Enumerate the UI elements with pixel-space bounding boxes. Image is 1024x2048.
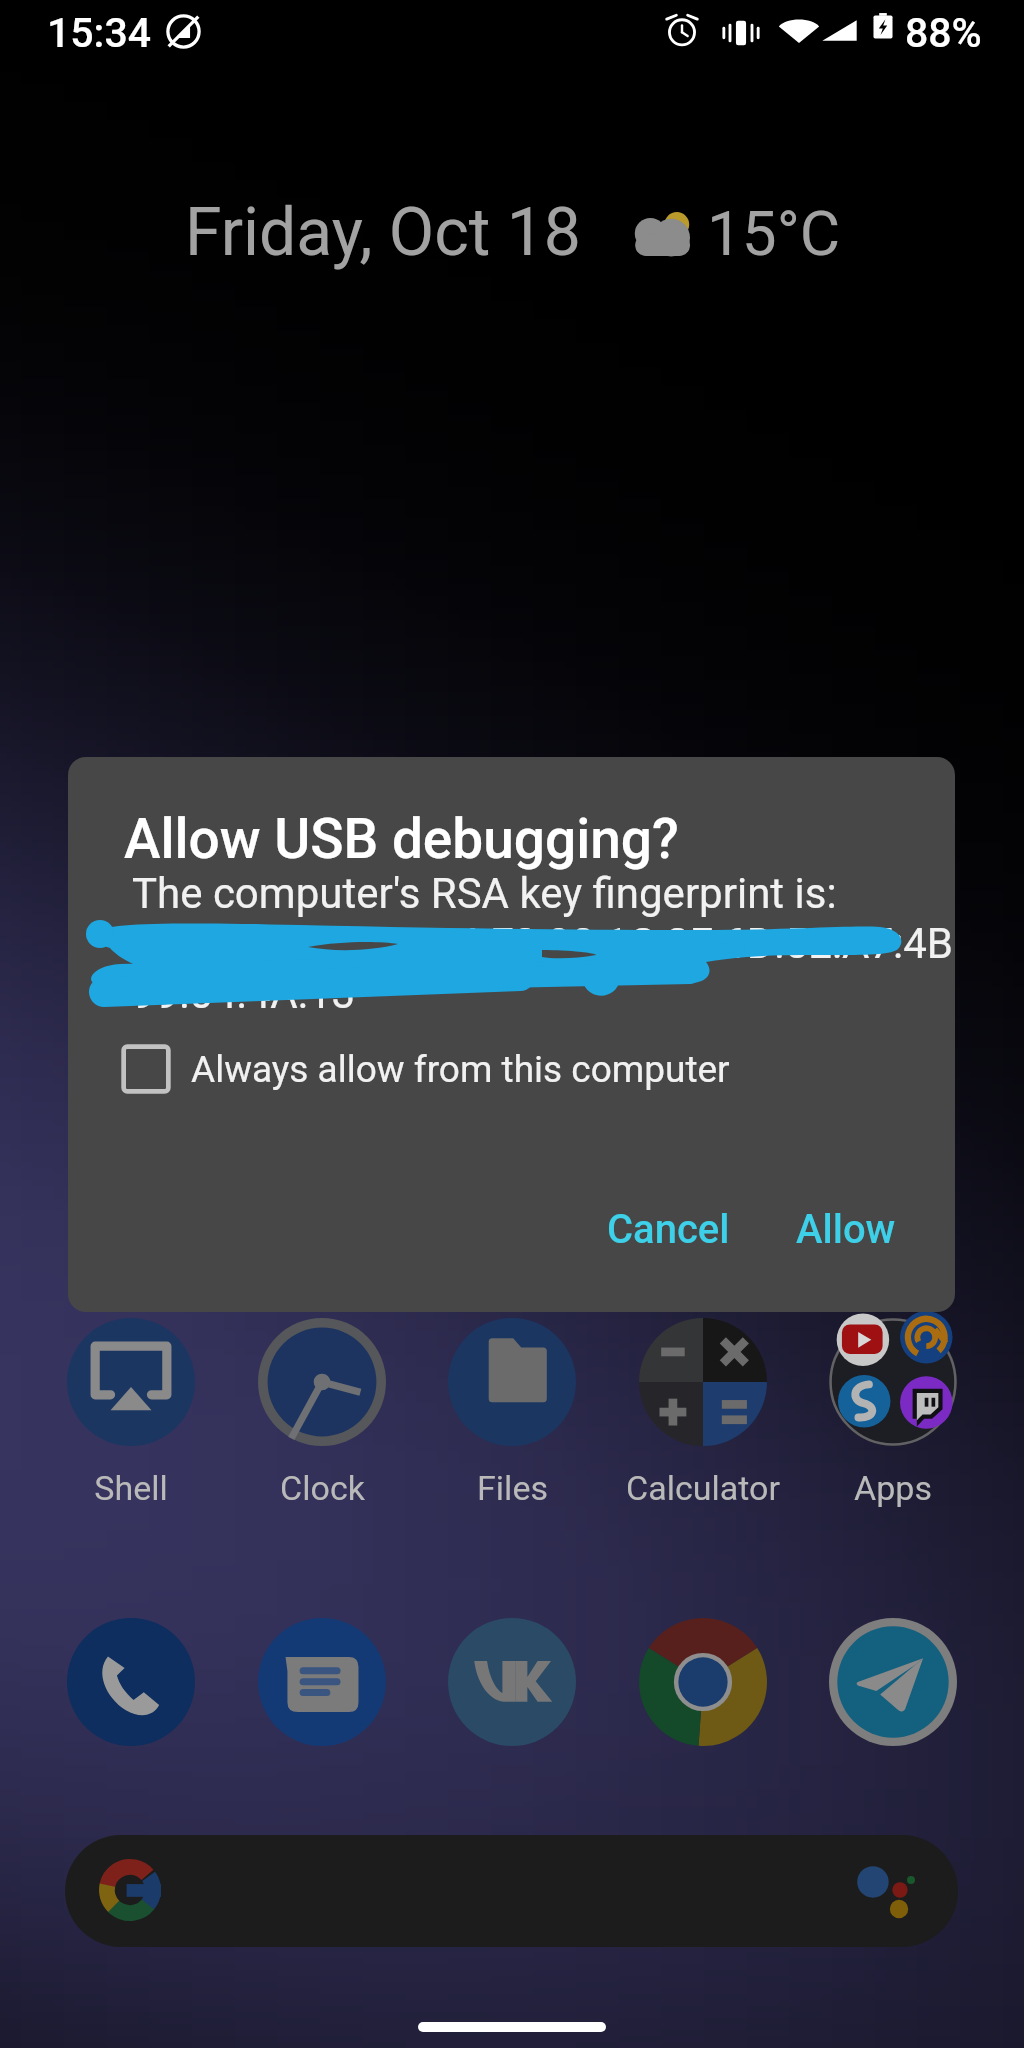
button[interactable]: Shell xyxy=(36,1318,226,1508)
staticText: Cancel xyxy=(607,1206,730,1253)
staticText: 88% xyxy=(905,9,982,57)
staticText: Apps xyxy=(854,1468,932,1508)
staticText: Always allow from this computer xyxy=(191,1048,730,1091)
button[interactable]: App xyxy=(639,1618,767,1746)
button[interactable]: Friday, Oct 18 xyxy=(185,194,581,271)
button[interactable]: Files xyxy=(417,1318,607,1508)
button[interactable]: Always allow from this computer xyxy=(120,1043,730,1095)
button[interactable]: Search xyxy=(65,1835,958,1947)
staticText: Shell xyxy=(94,1468,168,1508)
staticText: Calculator xyxy=(626,1468,780,1508)
button[interactable]: Apps xyxy=(798,1318,988,1508)
staticText: 15:34 xyxy=(47,9,152,57)
button[interactable]: App xyxy=(67,1618,195,1746)
staticText: Allow xyxy=(796,1206,896,1253)
button[interactable]: App xyxy=(829,1618,957,1746)
button[interactable]: App xyxy=(258,1618,386,1746)
staticText: The computer's RSA key fingerprint is: 8… xyxy=(132,869,955,1018)
button[interactable]: Allow xyxy=(782,1196,910,1263)
staticText: Clock xyxy=(280,1468,365,1508)
button[interactable]: Clock xyxy=(227,1318,417,1508)
button[interactable]: Calculator xyxy=(608,1318,798,1508)
button[interactable]: Cancel xyxy=(593,1196,744,1263)
button[interactable]: App xyxy=(448,1618,576,1746)
staticText: Files xyxy=(477,1468,548,1508)
staticText: Allow USB debugging? xyxy=(124,807,679,871)
button[interactable]: 15°C xyxy=(707,197,841,270)
